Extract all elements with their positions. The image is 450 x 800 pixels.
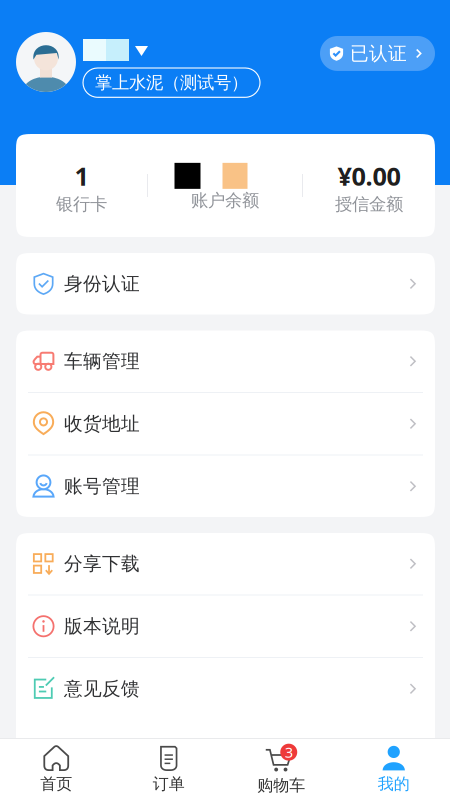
staticText: 分享下载 — [64, 552, 140, 575]
staticText: 购物车 — [257, 776, 305, 795]
button[interactable]: 首页 — [0, 745, 112, 794]
button[interactable]: 3 — [225, 744, 337, 795]
staticText: 意见反馈 — [64, 677, 140, 700]
button[interactable]: 车辆管理 — [16, 330, 435, 392]
staticText: 车辆管理 — [64, 350, 140, 373]
staticText: 身份认证 — [64, 272, 140, 295]
button[interactable]: 分享下载 — [16, 533, 435, 594]
button[interactable]: 已认证 — [320, 36, 435, 71]
staticText: 账号管理 — [64, 475, 140, 498]
staticText: 订单 — [153, 774, 185, 794]
button[interactable]: 版本说明 — [16, 595, 435, 657]
staticText: 版本说明 — [64, 615, 140, 638]
button[interactable]: 意见反馈 — [16, 658, 435, 719]
button[interactable]: 收货地址 — [16, 393, 435, 454]
button[interactable]: 身份认证 — [16, 253, 435, 314]
staticText: 收货地址 — [64, 412, 140, 435]
button[interactable]: 我的 — [337, 745, 450, 794]
staticText: ¥0.00 — [337, 159, 400, 193]
staticText: 授信金额 — [335, 194, 403, 215]
button[interactable]: 账号管理 — [16, 455, 435, 517]
staticText: 已认证 — [350, 42, 407, 65]
staticText: 我的 — [378, 774, 410, 794]
staticText: 银行卡 — [56, 194, 107, 215]
staticText: 首页 — [40, 774, 72, 794]
staticText: 1 — [74, 159, 88, 193]
staticText: 掌上水泥（测试号） — [95, 72, 248, 93]
button[interactable]: 订单 — [112, 745, 225, 794]
staticText: 3 — [285, 742, 293, 762]
staticText: 账户余额 — [191, 190, 259, 211]
